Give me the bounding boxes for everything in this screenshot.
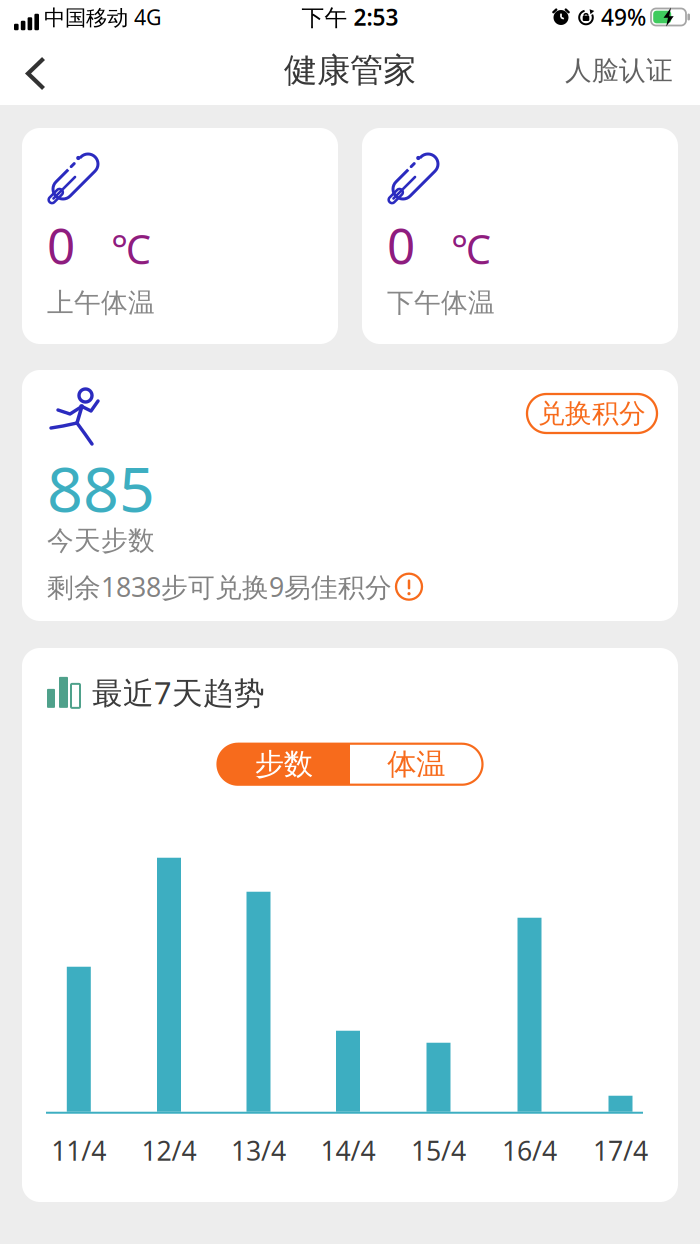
staticText: 中国移动 4G bbox=[44, 3, 162, 31]
button[interactable]: 885 bbox=[22, 370, 678, 621]
button[interactable]: 兑换积分 bbox=[527, 394, 657, 433]
staticText: 11/4 bbox=[51, 1133, 106, 1168]
staticText: 人脸认证 bbox=[565, 54, 673, 87]
staticText: 下午体温 bbox=[387, 286, 495, 319]
staticText: 885 bbox=[47, 446, 155, 529]
staticText: 17/4 bbox=[593, 1133, 648, 1168]
staticText: 最近7天趋势 bbox=[92, 672, 265, 713]
staticText: 0 bbox=[387, 212, 415, 277]
staticText: 12/4 bbox=[141, 1133, 196, 1168]
button[interactable]: 0 bbox=[362, 128, 678, 344]
staticText: 剩余1838步可兑换9易佳积分 bbox=[47, 569, 392, 604]
staticText: 13/4 bbox=[231, 1133, 286, 1168]
staticText: 体温 bbox=[387, 746, 445, 782]
staticText: 兑换积分 bbox=[538, 397, 646, 430]
staticText: 14/4 bbox=[320, 1133, 375, 1168]
staticText: ℃ bbox=[451, 222, 491, 275]
button[interactable]: 人脸认证 bbox=[565, 57, 700, 90]
staticText: 下午 2:53 bbox=[301, 2, 398, 32]
button[interactable]: 体温 bbox=[350, 744, 482, 785]
button[interactable]: 0 bbox=[22, 128, 338, 344]
staticText: 上午体温 bbox=[47, 286, 155, 319]
staticText: 健康管家 bbox=[284, 50, 416, 91]
button[interactable]: 步数 bbox=[217, 744, 350, 785]
staticText: 步数 bbox=[255, 746, 313, 782]
staticText: ℃ bbox=[111, 222, 151, 275]
staticText: 15/4 bbox=[411, 1133, 466, 1168]
staticText: 今天步数 bbox=[47, 524, 155, 557]
button[interactable] bbox=[0, 58, 61, 89]
staticText: 0 bbox=[47, 212, 75, 277]
staticText: 16/4 bbox=[502, 1133, 557, 1168]
staticText: 49% bbox=[601, 2, 646, 32]
